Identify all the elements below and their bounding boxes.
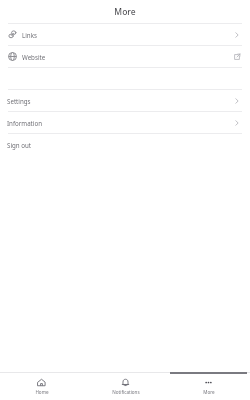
- button[interactable]: Sign out: [0, 134, 250, 155]
- staticText: Links: [22, 31, 37, 39]
- button[interactable]: Information: [0, 112, 250, 133]
- button[interactable]: Home: [0, 372, 83, 400]
- staticText: Website: [22, 53, 46, 61]
- button[interactable]: Links: [0, 24, 250, 45]
- staticText: Information: [7, 119, 43, 127]
- staticText: Home: [35, 389, 49, 395]
- staticText: More: [203, 389, 215, 395]
- staticText: More: [114, 6, 136, 18]
- button[interactable]: Notifications: [84, 372, 167, 400]
- staticText: Sign out: [7, 141, 32, 149]
- button[interactable]: More: [167, 372, 250, 400]
- button[interactable]: Settings: [0, 90, 250, 111]
- staticText: Settings: [7, 97, 31, 105]
- staticText: Notifications: [112, 389, 140, 395]
- button[interactable]: Website: [0, 46, 250, 67]
